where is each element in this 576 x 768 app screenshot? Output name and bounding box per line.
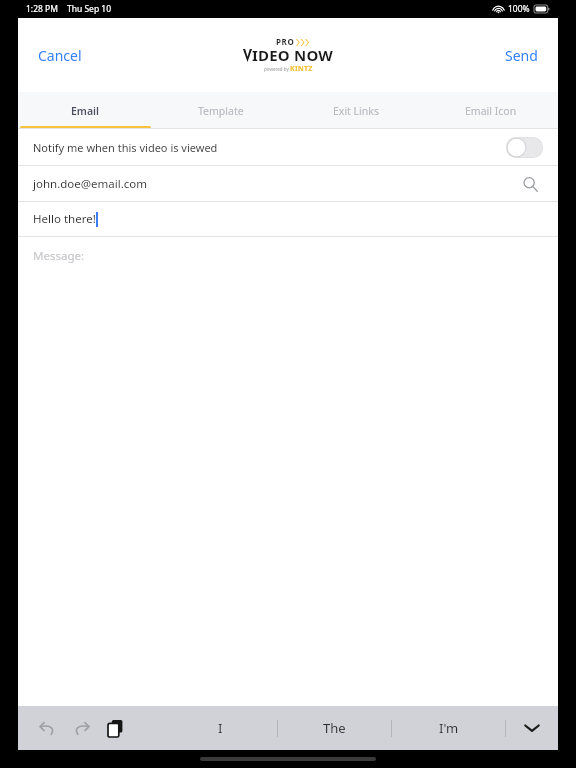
staticText: IDEO NOW [252,45,333,65]
button[interactable]: Search contacts [518,172,542,196]
staticText: john.doe@email.com [33,176,148,192]
button[interactable]: Email [18,92,153,129]
button[interactable]: Hide keyboard [506,706,558,750]
staticText: I'm [439,719,459,737]
button[interactable]: Send [493,37,550,74]
button[interactable]: john.doe@email.com [18,166,558,201]
button[interactable]: Redo [66,713,96,743]
button[interactable]: The [278,706,391,750]
staticText: 1:28 PM [26,3,58,15]
button[interactable]: Notify me when this video is viewed [506,137,543,158]
staticText: Email [71,104,100,118]
button[interactable]: Cancel [26,37,94,74]
staticText: The [323,719,346,737]
staticText: Thu Sep 10 [67,3,112,15]
button[interactable]: Email Icon [423,92,558,129]
button[interactable]: Paste [100,713,130,743]
button[interactable]: I'm [392,706,505,750]
button[interactable]: Template [153,92,288,129]
button[interactable]: Undo [32,713,62,743]
staticText: PRO [276,36,295,47]
staticText: Message: [33,248,85,264]
staticText: powered by [264,66,290,72]
button[interactable]: Exit Links [288,92,423,129]
staticText: Template [198,104,244,118]
staticText: Cancel [38,46,82,65]
staticText: Exit Links [333,104,379,118]
staticText: Send [505,46,538,65]
staticText: Notify me when this video is viewed [33,140,218,155]
button[interactable]: Notify me when this video is viewed [18,129,558,165]
button[interactable]: Hello there! [18,202,558,236]
staticText: Email Icon [465,104,517,118]
staticText: Hello there! [33,211,96,227]
staticText: 100% [508,3,530,15]
staticText: I [218,719,223,737]
staticText: KINTZ [290,64,313,74]
button[interactable]: I [164,706,277,750]
